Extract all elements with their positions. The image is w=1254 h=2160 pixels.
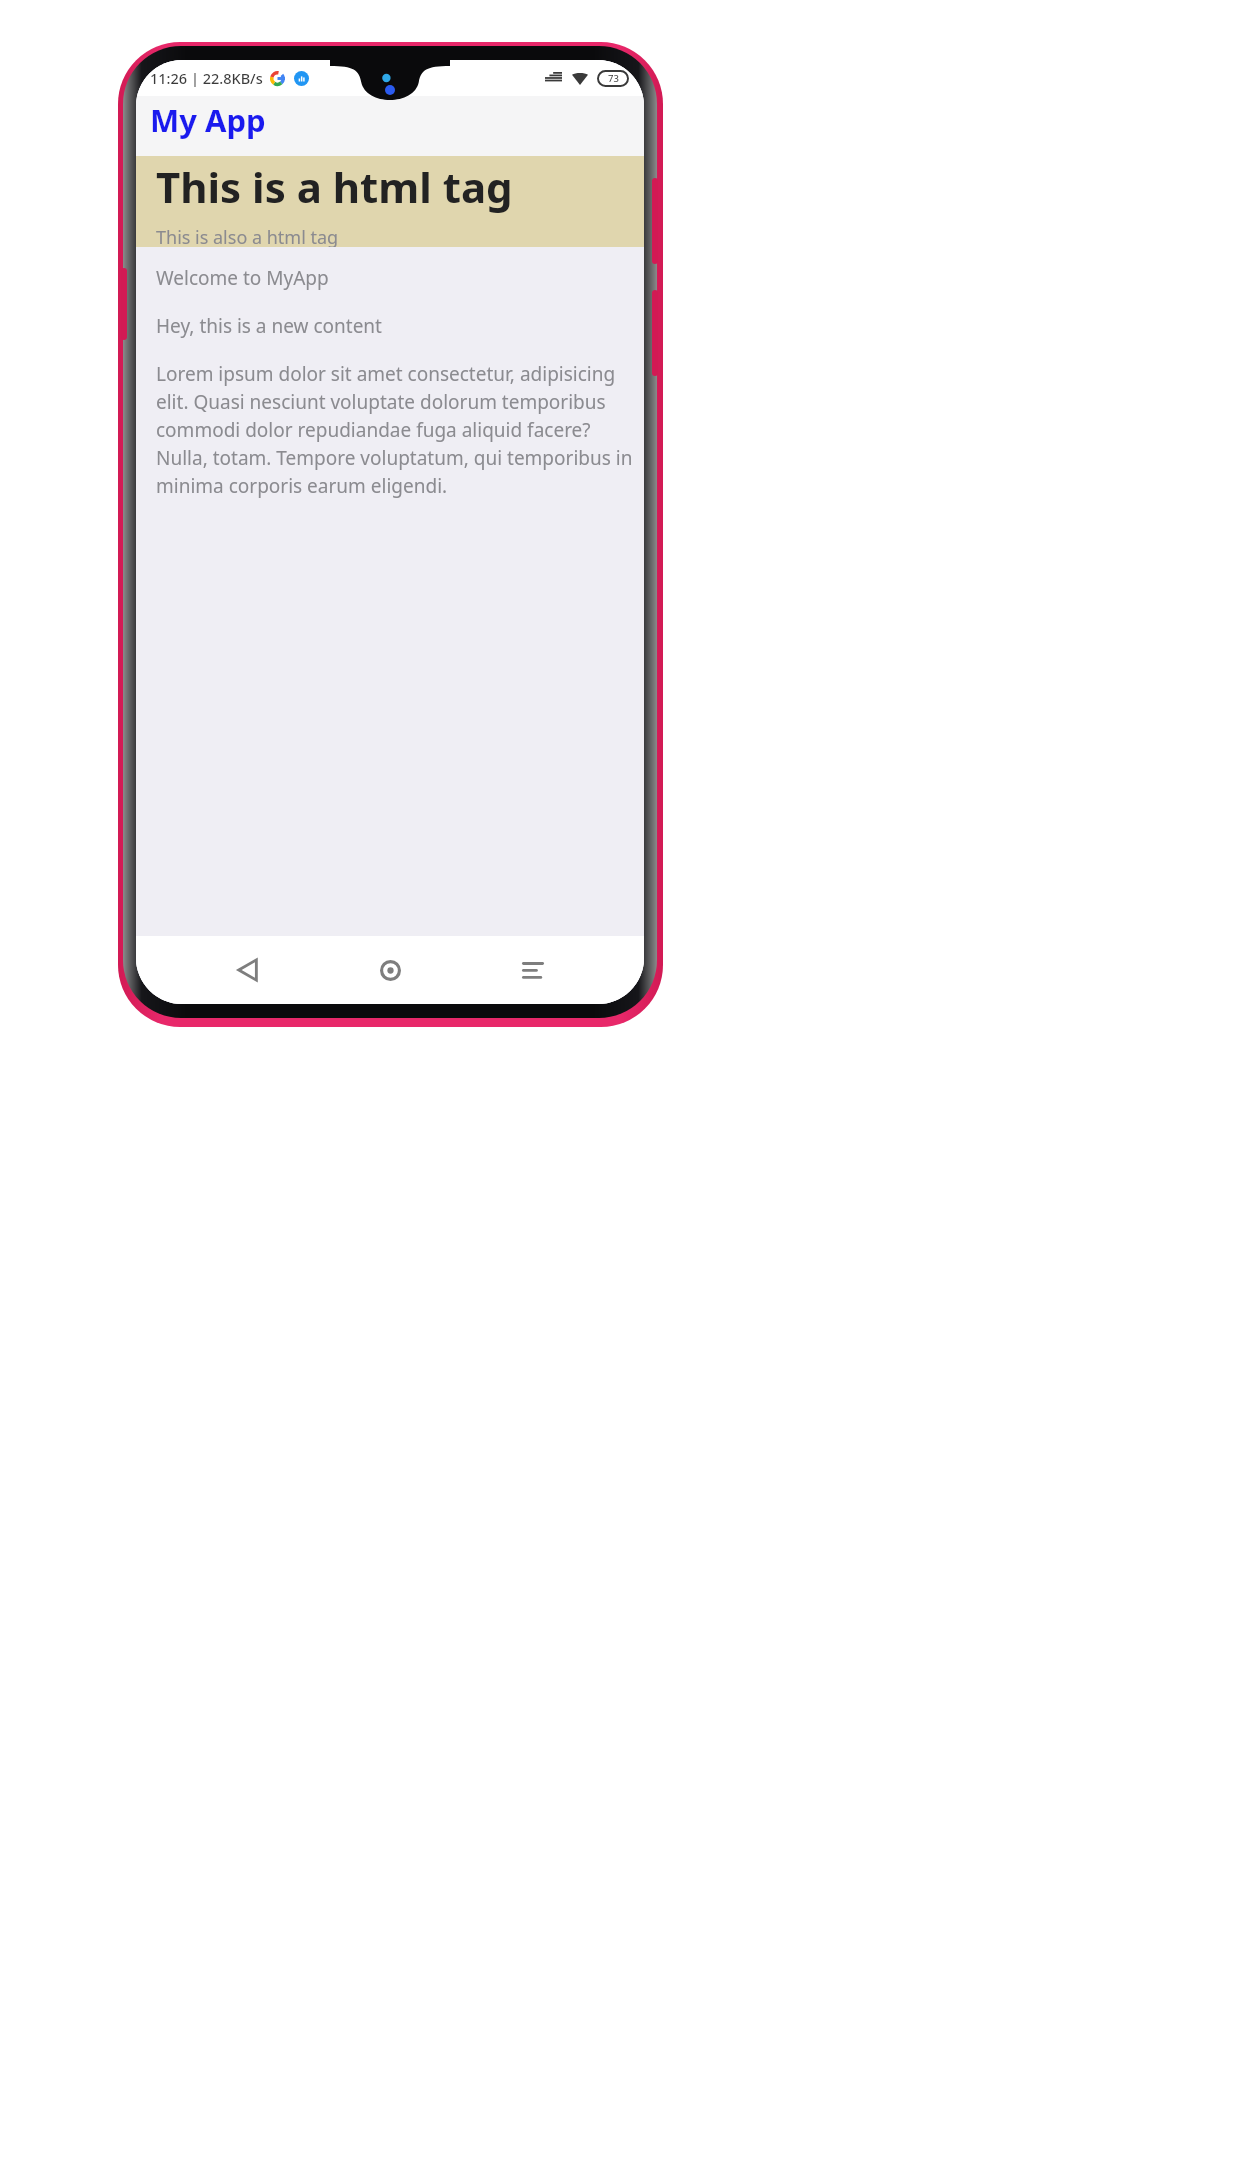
button[interactable]: Home: [359, 939, 421, 1001]
staticText: This is a html tag: [156, 158, 513, 215]
button[interactable]: My App: [136, 96, 644, 156]
staticText: 73: [608, 72, 619, 85]
staticText: This is also a html tag: [156, 225, 339, 247]
staticText: Hey, this is a new content: [156, 313, 382, 339]
staticText: My App: [150, 99, 266, 141]
button[interactable]: Back: [217, 939, 279, 1001]
staticText: Welcome to MyApp: [156, 265, 329, 291]
button[interactable]: Recent apps: [502, 939, 564, 1001]
staticText: 11:26 | 22.8KB/s: [150, 68, 263, 88]
staticText: Lorem ipsum dolor sit amet consectetur, …: [156, 361, 636, 499]
